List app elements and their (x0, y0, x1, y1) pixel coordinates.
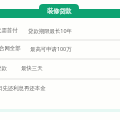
button[interactable]: 无需首付 (0, 20, 120, 40)
button[interactable]: 装修贷款 (39, 4, 79, 18)
staticText: 最高可申请100万 (30, 45, 72, 52)
staticText: 贷款期限最长10年 (28, 27, 72, 34)
staticText: 装修贷款 (47, 7, 72, 15)
button[interactable]: 合网全部 (0, 39, 120, 58)
button[interactable]: 日先还利息再还本金 (0, 78, 120, 98)
staticText: 贷款 (0, 65, 7, 72)
staticText: 合网全部 (0, 45, 21, 52)
staticText: 无需首付 (0, 27, 18, 34)
staticText: 日先还利息再还本金 (0, 85, 46, 92)
button[interactable]: 贷款 (0, 58, 120, 79)
staticText: 最快三天 (21, 65, 43, 72)
